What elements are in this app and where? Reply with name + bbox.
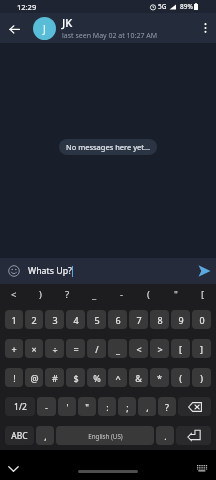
button[interactable]: ^: [108, 368, 127, 387]
button[interactable]: :: [98, 397, 116, 416]
button[interactable]: Change keyboard: [192, 458, 213, 479]
button[interactable]: [: [171, 339, 190, 358]
button[interactable]: /: [87, 339, 106, 358]
staticText: ?: [65, 288, 70, 301]
staticText: JK: [62, 15, 73, 30]
button[interactable]: $: [66, 368, 85, 387]
button[interactable]: @: [25, 368, 43, 387]
staticText: ,: [44, 430, 47, 442]
button[interactable]: ': [58, 397, 76, 416]
staticText: ABC: [11, 430, 28, 442]
staticText: =: [73, 343, 79, 355]
button[interactable]: 2: [25, 310, 43, 329]
button[interactable]: 8: [150, 310, 169, 329]
button[interactable]: 3: [45, 310, 64, 329]
staticText: 9: [178, 314, 184, 326]
button[interactable]: Emoji: [0, 258, 28, 284]
button[interactable]: ): [192, 368, 211, 387]
button[interactable]: =: [66, 339, 85, 358]
staticText: &: [135, 372, 142, 384]
button[interactable]: ): [27, 284, 54, 305]
button[interactable]: Backspace: [178, 397, 211, 416]
button[interactable]: ]: [192, 339, 211, 358]
staticText: @: [30, 372, 39, 384]
staticText: [: [201, 288, 205, 301]
staticText: ": [174, 288, 178, 301]
staticText: ?: [165, 401, 169, 413]
button[interactable]: ,: [138, 397, 156, 416]
button[interactable]: 0: [192, 310, 211, 329]
button[interactable]: 1/2: [5, 397, 35, 416]
staticText: $: [73, 372, 79, 384]
staticText: 3: [52, 314, 58, 326]
button[interactable]: ×: [25, 339, 43, 358]
button[interactable]: ÷: [45, 339, 64, 358]
button[interactable]: More options: [194, 13, 216, 43]
button[interactable]: ,: [36, 426, 54, 445]
staticText: >: [157, 343, 163, 355]
button[interactable]: ": [162, 284, 189, 305]
staticText: 89%: [180, 2, 193, 11]
button[interactable]: +: [5, 339, 23, 358]
staticText: ': [66, 401, 69, 413]
staticText: !: [13, 372, 16, 384]
button[interactable]: _: [108, 339, 127, 358]
button[interactable]: 4: [66, 310, 85, 329]
button[interactable]: Hide keyboard: [3, 458, 24, 479]
button[interactable]: >: [150, 339, 169, 358]
button[interactable]: ;: [118, 397, 136, 416]
staticText: /: [95, 343, 99, 355]
staticText: 6: [115, 314, 121, 326]
button[interactable]: 9: [171, 310, 190, 329]
staticText: #: [52, 372, 58, 384]
button[interactable]: 6: [108, 310, 127, 329]
button[interactable]: 7: [129, 310, 148, 329]
staticText: *: [157, 372, 162, 384]
staticText: ": [85, 401, 89, 413]
button[interactable]: ABC: [5, 426, 34, 445]
staticText: (: [147, 288, 150, 301]
button[interactable]: (: [171, 368, 190, 387]
button[interactable]: %: [87, 368, 106, 387]
staticText: -: [45, 401, 48, 413]
button[interactable]: 5: [87, 310, 106, 329]
button[interactable]: -: [108, 284, 135, 305]
button[interactable]: _: [81, 284, 108, 305]
staticText: +: [11, 343, 17, 355]
staticText: English (US): [88, 432, 123, 440]
staticText: ): [39, 288, 42, 301]
staticText: 8: [157, 314, 163, 326]
staticText: ): [200, 372, 203, 384]
button[interactable]: ": [78, 397, 96, 416]
staticText: 5: [94, 314, 100, 326]
staticText: _: [116, 343, 120, 355]
staticText: 7: [136, 314, 142, 326]
button[interactable]: *: [150, 368, 169, 387]
button[interactable]: English (US): [56, 426, 154, 445]
button[interactable]: ?: [158, 397, 176, 416]
button[interactable]: <: [0, 284, 27, 305]
staticText: last seen May 02 at 10:27 AM: [62, 31, 158, 41]
staticText: [: [179, 343, 182, 355]
button[interactable]: Back: [0, 13, 29, 43]
staticText: Whats Up?: [28, 265, 72, 277]
button[interactable]: -: [37, 397, 56, 416]
staticText: :: [106, 401, 109, 413]
button[interactable]: Send: [192, 258, 216, 284]
button[interactable]: !: [5, 368, 23, 387]
staticText: <: [11, 288, 17, 301]
button[interactable]: [: [189, 284, 216, 305]
button[interactable]: #: [45, 368, 64, 387]
button[interactable]: <: [129, 339, 148, 358]
button[interactable]: J: [33, 17, 56, 40]
button[interactable]: 1: [5, 310, 23, 329]
button[interactable]: &: [129, 368, 148, 387]
staticText: (: [179, 372, 182, 384]
button[interactable]: (: [135, 284, 162, 305]
staticText: 12:29: [17, 2, 37, 12]
button[interactable]: .: [156, 426, 174, 445]
button[interactable]: ?: [54, 284, 81, 305]
staticText: 2: [31, 314, 37, 326]
staticText: ,: [146, 401, 149, 413]
button[interactable]: Enter: [176, 426, 211, 445]
